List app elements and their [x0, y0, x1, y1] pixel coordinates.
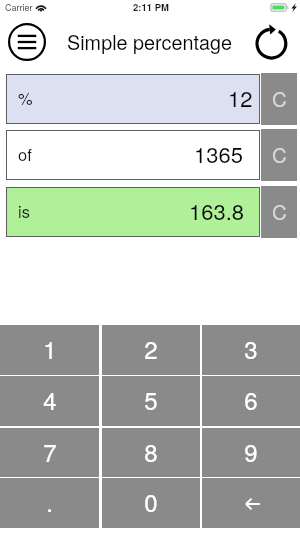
- button[interactable]: 9: [202, 428, 300, 477]
- button[interactable]: 5: [102, 376, 200, 426]
- staticText: %: [18, 86, 33, 110]
- button[interactable]: C: [261, 73, 297, 125]
- staticText: Simple percentage: [67, 27, 233, 55]
- staticText: C: [272, 196, 287, 225]
- button[interactable]: is: [6, 187, 260, 237]
- button[interactable]: C: [261, 186, 297, 238]
- staticText: 12: [228, 82, 253, 114]
- staticText: 2: [144, 331, 158, 365]
- button[interactable]: Reset: [252, 24, 292, 64]
- button[interactable]: C: [261, 129, 297, 181]
- staticText: C: [272, 83, 287, 112]
- button[interactable]: 8: [102, 428, 200, 477]
- button[interactable]: 0: [102, 478, 200, 528]
- staticText: 1365: [194, 138, 243, 170]
- staticText: is: [18, 199, 30, 223]
- button[interactable]: .: [0, 478, 99, 528]
- button[interactable]: 6: [202, 376, 300, 426]
- button[interactable]: 7: [0, 428, 99, 477]
- staticText: 3: [244, 331, 258, 365]
- button[interactable]: Menu: [8, 23, 46, 61]
- staticText: 7: [43, 434, 57, 468]
- staticText: 4: [43, 382, 57, 416]
- staticText: 5: [144, 382, 158, 416]
- button[interactable]: 3: [202, 325, 300, 375]
- staticText: 8: [144, 434, 158, 468]
- staticText: Carrier: [5, 1, 33, 14]
- other: Backspace: [202, 478, 300, 528]
- staticText: of: [18, 142, 32, 166]
- button[interactable]: 2: [102, 325, 200, 375]
- button[interactable]: of: [6, 130, 260, 180]
- staticText: 2:11 PM: [133, 0, 169, 14]
- staticText: 163.8: [189, 195, 245, 227]
- button[interactable]: %: [6, 74, 260, 124]
- button[interactable]: Backspace: [202, 478, 300, 528]
- staticText: 6: [244, 382, 258, 416]
- button[interactable]: 1: [0, 325, 99, 375]
- staticText: .: [46, 484, 53, 518]
- staticText: 1: [43, 331, 57, 365]
- staticText: C: [272, 139, 287, 168]
- button[interactable]: 4: [0, 376, 99, 426]
- staticText: 0: [144, 484, 158, 518]
- staticText: 9: [244, 434, 258, 468]
